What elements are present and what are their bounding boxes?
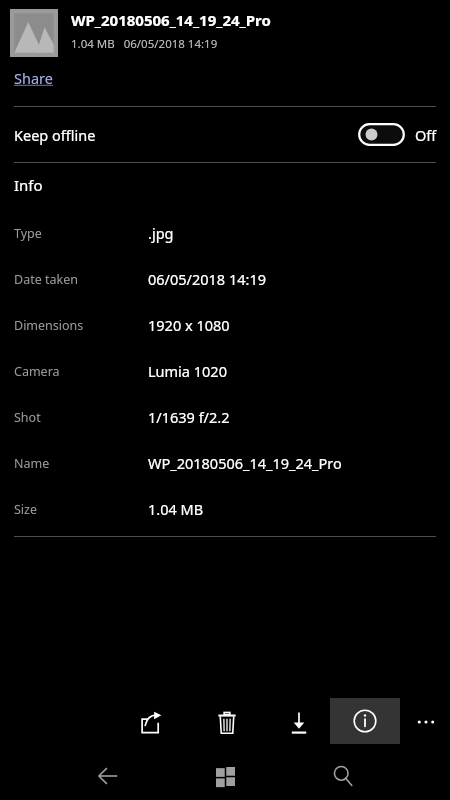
staticText: Off — [415, 125, 437, 145]
button[interactable]: Camera — [0, 348, 450, 394]
button[interactable]: Save — [276, 700, 322, 746]
staticText: Info — [14, 175, 43, 195]
button[interactable]: Delete — [204, 700, 250, 746]
staticText: Shot — [14, 409, 41, 426]
staticText: WP_20180506_14_19_24_Pro — [71, 10, 271, 30]
staticText: Date taken — [14, 271, 78, 288]
staticText: 1/1639 f/2.2 — [148, 407, 230, 427]
staticText: Keep offline — [14, 125, 96, 145]
button[interactable]: Name — [0, 440, 450, 486]
staticText: 1.04 MB 06/05/2018 14:19 — [71, 36, 218, 52]
button[interactable]: Dimensions — [0, 302, 450, 348]
staticText: Share — [14, 68, 53, 88]
staticText: 1.04 MB — [148, 499, 204, 519]
button[interactable]: Share — [128, 700, 174, 746]
button[interactable]: Size — [0, 486, 450, 532]
staticText: Name — [14, 455, 50, 472]
button[interactable]: Search — [321, 752, 365, 800]
staticText: Lumia 1020 — [148, 361, 227, 381]
staticText: 1920 x 1080 — [148, 315, 230, 335]
button[interactable]: More options — [404, 700, 448, 744]
button[interactable]: WP_20180506_14_19_24_Pro — [0, 0, 450, 66]
staticText: Dimensions — [14, 317, 84, 334]
staticText: WP_20180506_14_19_24_Pro — [148, 453, 342, 473]
staticText: Size — [14, 501, 38, 518]
button[interactable]: Date taken — [0, 256, 450, 302]
staticText: 06/05/2018 14:19 — [148, 269, 266, 289]
staticText: Camera — [14, 363, 60, 380]
button[interactable]: Keep offline, Off — [358, 123, 405, 146]
button[interactable]: Home — [203, 752, 247, 800]
button[interactable]: Info — [330, 698, 400, 744]
staticText: .jpg — [148, 223, 174, 243]
button[interactable]: Back — [86, 752, 130, 800]
button[interactable]: Type — [0, 210, 450, 256]
button[interactable]: Share — [14, 66, 53, 90]
staticText: Type — [14, 225, 42, 242]
button[interactable]: Keep offline — [0, 107, 450, 162]
button[interactable]: Shot — [0, 394, 450, 440]
